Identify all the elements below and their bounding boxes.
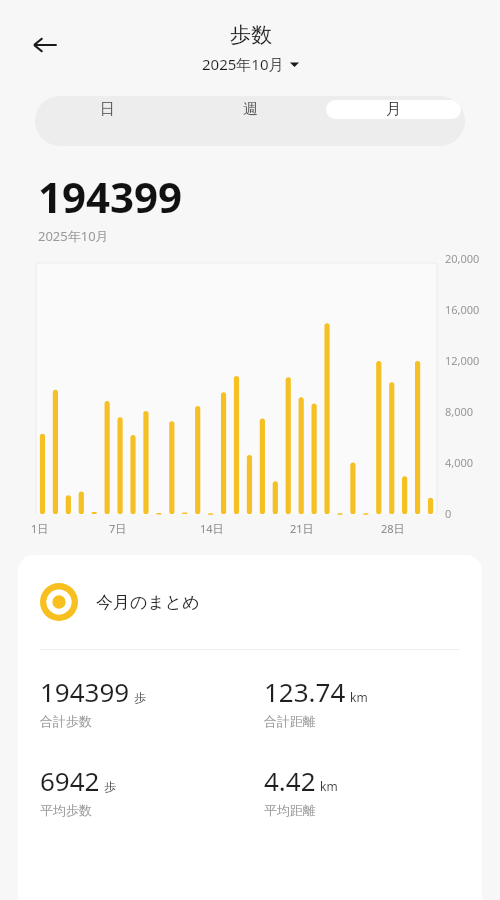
- staticText: 16,000: [445, 302, 480, 317]
- staticText: 12,000: [445, 353, 480, 368]
- button[interactable]: 日: [39, 100, 175, 119]
- staticText: 6942: [40, 763, 100, 798]
- staticText: 21日: [290, 521, 314, 536]
- button[interactable]: Back: [22, 22, 68, 68]
- staticText: 歩: [104, 779, 116, 794]
- staticText: 4.42: [264, 763, 316, 798]
- staticText: 28日: [381, 521, 405, 536]
- staticText: 平均距離: [264, 802, 316, 818]
- staticText: 2025年10月: [202, 54, 284, 74]
- staticText: 2025年10月: [38, 227, 109, 245]
- staticText: 合計歩数: [40, 713, 92, 729]
- staticText: 歩数: [230, 22, 272, 48]
- staticText: 0: [445, 506, 452, 521]
- staticText: 194399: [40, 674, 130, 709]
- staticText: 歩: [134, 690, 146, 705]
- button[interactable]: 週: [183, 100, 318, 119]
- staticText: 14日: [200, 521, 224, 536]
- staticText: 今月のまとめ: [96, 592, 200, 613]
- staticText: km: [320, 778, 338, 794]
- staticText: 20,000: [445, 251, 480, 266]
- staticText: 月: [386, 100, 401, 119]
- button[interactable]: 2025年10月: [198, 52, 303, 76]
- staticText: 4,000: [445, 455, 474, 470]
- staticText: 8,000: [445, 404, 474, 419]
- staticText: 7日: [109, 521, 127, 536]
- staticText: 平均歩数: [40, 802, 92, 818]
- button[interactable]: 今月のまとめ: [18, 581, 482, 623]
- staticText: 合計距離: [264, 713, 316, 729]
- staticText: 週: [243, 100, 258, 119]
- staticText: 1日: [31, 521, 49, 536]
- staticText: 123.74: [264, 674, 346, 709]
- button[interactable]: 月: [326, 100, 461, 119]
- staticText: km: [350, 689, 368, 705]
- staticText: 日: [100, 100, 115, 119]
- staticText: 194399: [38, 168, 183, 225]
